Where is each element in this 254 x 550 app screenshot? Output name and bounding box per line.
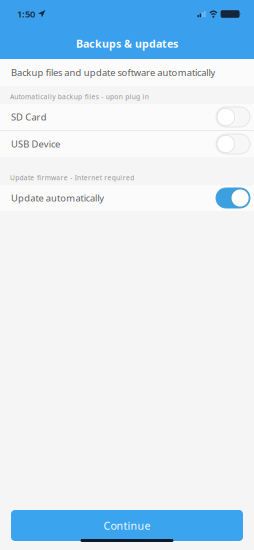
staticText: 1:50 xyxy=(17,8,35,20)
staticText: SD Card xyxy=(11,111,47,123)
button[interactable]: USB Device xyxy=(0,131,254,157)
staticText: Update automatically xyxy=(11,192,104,204)
staticText: Backups & updates xyxy=(76,36,178,51)
button[interactable]: SD Card xyxy=(0,104,254,130)
staticText: Backup files and update software automat… xyxy=(11,66,215,79)
staticText: USB Device xyxy=(11,138,60,150)
staticText: Automatically backup files - upon plug i… xyxy=(10,92,149,101)
button[interactable]: Update automatically xyxy=(0,185,254,211)
staticText: Update firmware - Internet required xyxy=(10,173,134,182)
staticText: Continue xyxy=(103,518,150,533)
button[interactable]: Continue xyxy=(11,510,243,541)
